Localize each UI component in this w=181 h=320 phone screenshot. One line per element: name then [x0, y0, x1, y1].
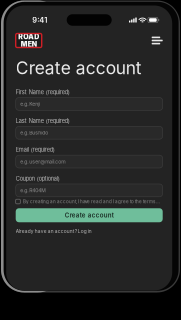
staticText: MEN [21, 40, 37, 48]
staticText: Already have an account? Log in [16, 228, 92, 234]
button[interactable]: e.g. Bushido [16, 126, 163, 139]
staticText: e.g. Bushido [20, 130, 48, 136]
staticText: e.g. Kenji [20, 101, 40, 107]
staticText: Coupon (optional) [16, 175, 60, 182]
staticText: By creating an account, I have read and … [23, 199, 160, 204]
staticText: First Name (required) [16, 89, 70, 96]
button[interactable]: Menu [152, 36, 163, 45]
staticText: 9:41 [32, 15, 47, 24]
button[interactable]: e.g. R404M [16, 184, 163, 197]
button[interactable]: Create account [16, 208, 163, 222]
staticText: Create account [16, 57, 142, 78]
button[interactable]: Already have an account? Log in [16, 228, 163, 234]
staticText: e.g. user@mail.com [20, 158, 65, 165]
button[interactable]: By creating an account, I have read and … [16, 199, 163, 204]
staticText: e.g. R404M [20, 187, 46, 193]
button[interactable]: Road Men [16, 33, 42, 47]
staticText: Create account [65, 211, 114, 219]
staticText: Email (required) [16, 146, 55, 153]
button[interactable]: e.g. user@mail.com [16, 155, 163, 168]
button[interactable]: e.g. Kenji [16, 98, 163, 110]
staticText: ROAD [18, 32, 39, 41]
staticText: Last Name (required) [16, 118, 70, 124]
